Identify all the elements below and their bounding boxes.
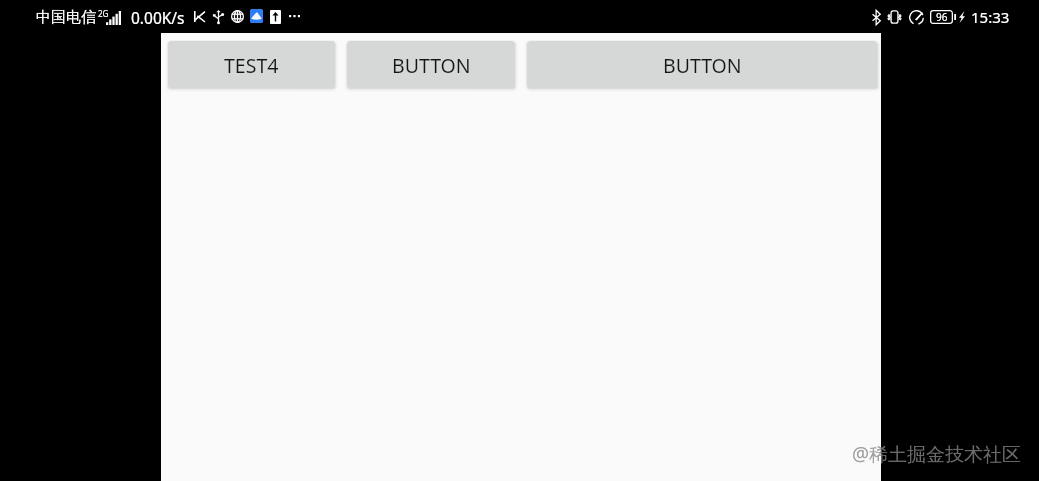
staticText: BUTTON [663, 52, 742, 79]
staticText: 0.00K/s [131, 7, 185, 28]
other: Mobile signal strength [106, 11, 121, 25]
staticText: 2G [98, 8, 109, 19]
staticText: 中国电信 [36, 8, 96, 27]
button[interactable]: BUTTON [347, 41, 515, 88]
staticText: @稀土掘金技术社区 [852, 441, 1022, 467]
other: More notifications [289, 15, 300, 18]
staticText: TEST4 [224, 52, 279, 79]
other: Battery 96 percent [930, 10, 956, 24]
staticText: BUTTON [392, 52, 471, 79]
other: Charging [959, 11, 965, 23]
button[interactable]: BUTTON [527, 41, 877, 88]
staticText: 96 [936, 10, 948, 24]
other: USB connected [214, 10, 223, 24]
other: Uploading [270, 10, 281, 24]
other: Keyboard [194, 11, 205, 22]
other: Performance mode [908, 10, 925, 25]
staticText: 15:33 [971, 7, 1010, 27]
other: VPN [231, 10, 244, 23]
button[interactable]: TEST4 [168, 41, 335, 88]
other: Bluetooth on [872, 10, 881, 25]
other: Cloud sync [250, 9, 263, 23]
other: Ringer vibrate [886, 10, 903, 24]
